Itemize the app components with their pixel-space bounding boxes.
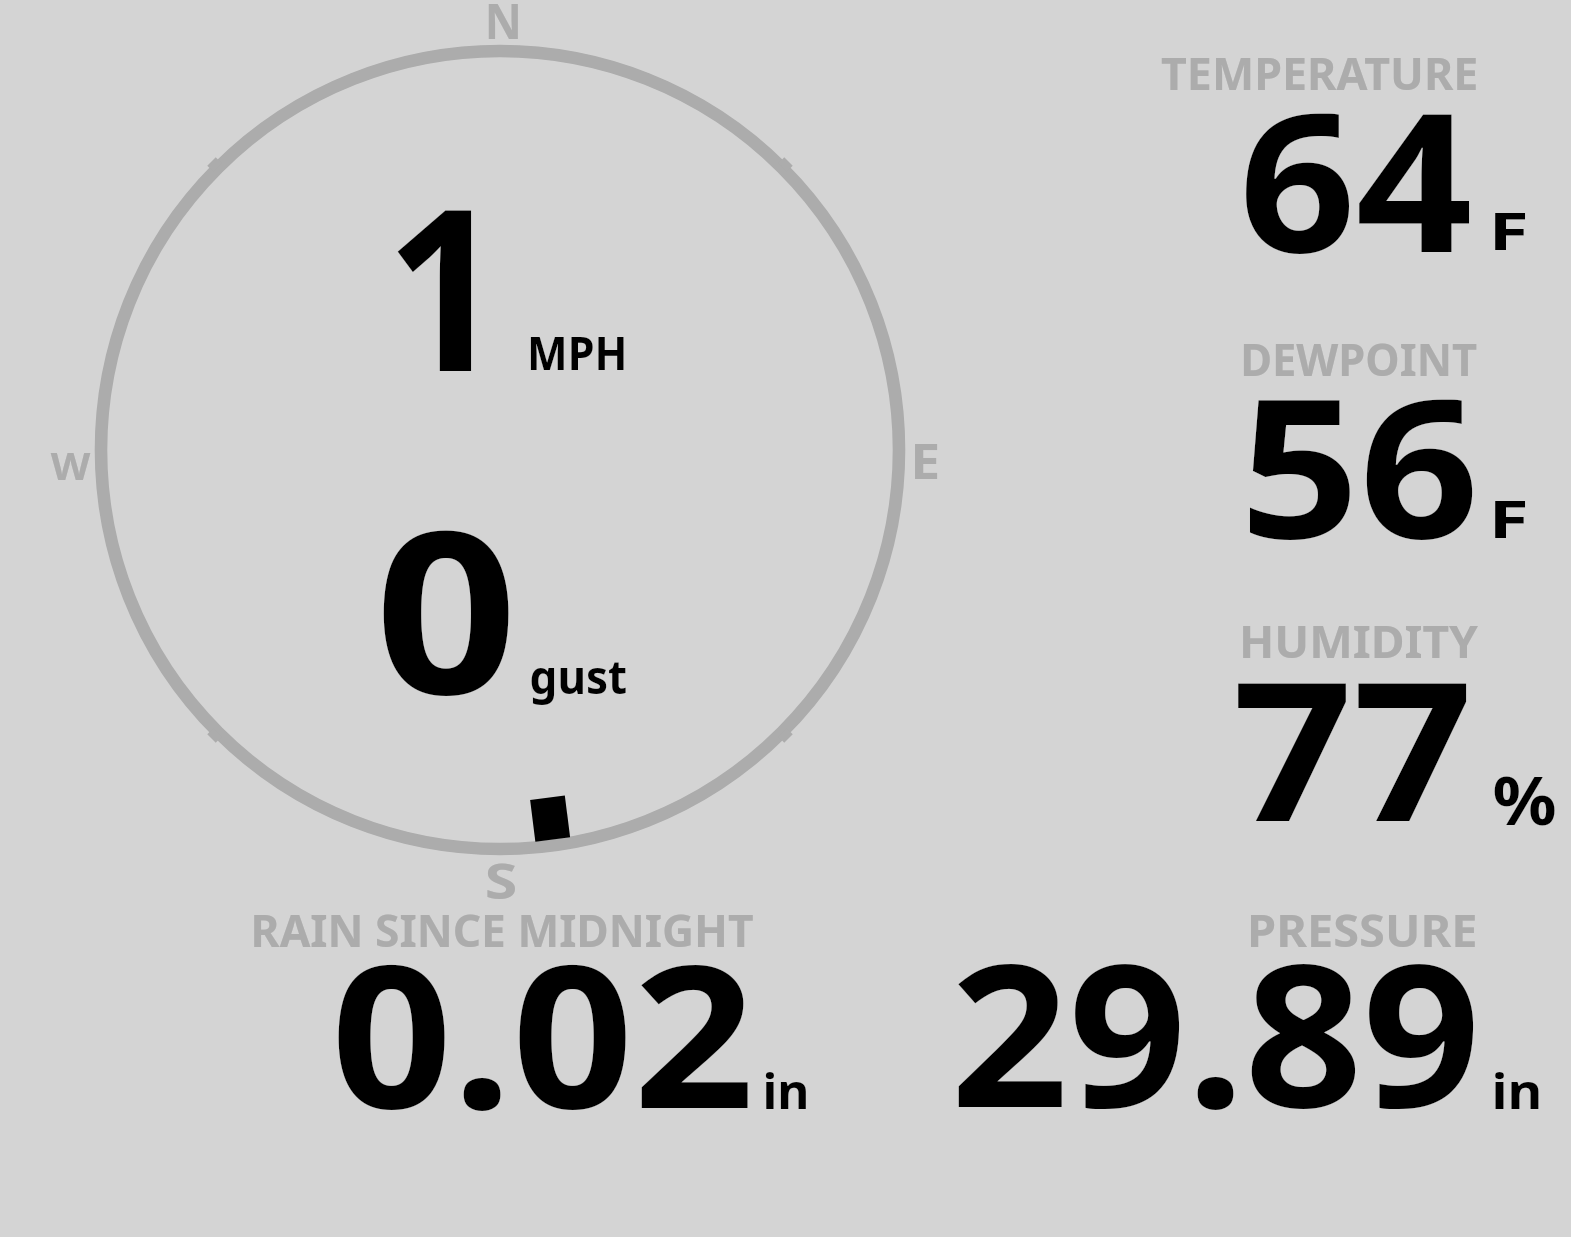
button[interactable]: Wind 1 MPH, gusting 0, direction south — [96, 46, 906, 856]
button[interactable]: Humidity 77 percent — [1140, 608, 1550, 833]
button[interactable]: Temperature 64 F — [1140, 40, 1550, 265]
button[interactable]: Dewpoint 56 F — [1140, 326, 1550, 551]
button[interactable]: Pressure 29.89 in — [900, 900, 1550, 1125]
button[interactable]: Rain since midnight 0.02 in — [240, 900, 820, 1125]
